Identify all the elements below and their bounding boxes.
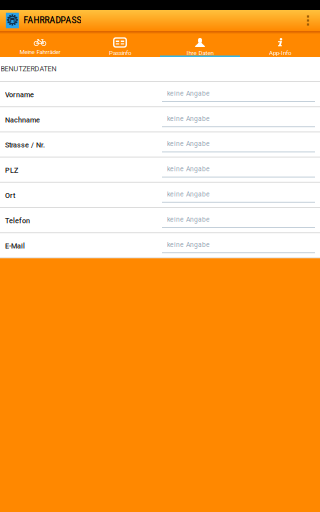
staticText: keine Angabe (167, 140, 210, 148)
staticText: Ort (5, 191, 15, 200)
button[interactable]: E-Mail (0, 233, 320, 258)
button[interactable]: Telefon (0, 208, 320, 233)
staticText: Meine Fahrräder (19, 48, 60, 56)
staticText: BENUTZERDATEN (1, 65, 57, 73)
button[interactable]: Strasse / Nr. (0, 132, 320, 158)
staticText: App-Info (269, 49, 291, 57)
staticText: Nachname (5, 116, 40, 124)
button[interactable]: Meine Fahrräder (0, 34, 80, 57)
button[interactable]: Ihre Daten (160, 34, 240, 57)
button[interactable]: Ort (0, 183, 320, 208)
staticText: keine Angabe (167, 241, 210, 248)
staticText: keine Angabe (167, 89, 210, 97)
button[interactable]: PLZ (0, 158, 320, 183)
staticText: Telefon (5, 216, 30, 225)
button[interactable]: App-Info (240, 34, 320, 57)
button[interactable]: Nachname (0, 107, 320, 132)
button[interactable]: More options (299, 10, 317, 31)
staticText: FAHRRADPASS (23, 16, 81, 25)
button[interactable]: Passinfo (80, 34, 160, 57)
staticText: keine Angabe (167, 115, 210, 122)
staticText: keine Angabe (167, 165, 210, 173)
staticText: Ihre Daten (186, 49, 213, 57)
staticText: keine Angabe (167, 215, 210, 223)
button[interactable]: Vorname (0, 82, 320, 107)
staticText: Vorname (5, 90, 34, 99)
staticText: Strasse / Nr. (5, 141, 45, 149)
staticText: Passinfo (109, 49, 131, 57)
staticText: keine Angabe (167, 190, 210, 198)
staticText: PLZ (5, 166, 18, 174)
staticText: E-Mail (5, 242, 25, 250)
